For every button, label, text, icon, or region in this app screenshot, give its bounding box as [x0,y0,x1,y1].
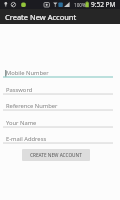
button[interactable]: Password [0,82,120,98]
staticText: Your Name [6,119,37,127]
staticText: Reference Number [6,102,58,110]
staticText: 100% [74,2,86,8]
staticText: E-mail Address [6,135,47,143]
button[interactable]: Reference Number [0,98,120,114]
button[interactable]: E-mail Address [0,131,120,147]
button[interactable]: Create New Account [0,9,120,24]
staticText: Create New Account [5,12,77,22]
button[interactable]: Your Name [0,115,120,131]
staticText: CREATE NEW ACCOUNT [30,152,82,158]
staticText: 9:52 PM [91,0,116,9]
button[interactable]: Mobile Number [0,65,120,81]
staticText: Mobile Number [6,69,49,77]
staticText: Password [6,86,33,94]
button[interactable]: CREATE NEW ACCOUNT [22,149,90,161]
